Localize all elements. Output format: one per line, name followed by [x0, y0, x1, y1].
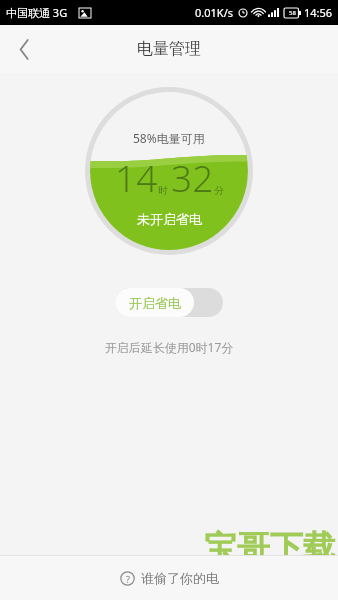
staticText: 58	[289, 9, 296, 17]
button[interactable]: Back	[0, 25, 48, 73]
staticText: 58%电量可用	[133, 130, 205, 146]
staticText: 14:56	[304, 5, 333, 20]
staticText: 分	[214, 184, 224, 197]
staticText: 14	[115, 152, 158, 202]
staticText: 开启后延长使用0时17分	[0, 339, 338, 355]
button[interactable]: ?	[0, 556, 338, 600]
staticText: 中国联通 3G	[6, 5, 68, 20]
staticText: 32	[171, 152, 214, 202]
staticText: 0.01K/s	[195, 5, 233, 20]
staticText: 谁偷了你的电	[141, 570, 219, 586]
staticText: 宝哥下载	[204, 527, 336, 569]
staticText: 电量管理	[137, 39, 201, 59]
button[interactable]: 开启省电	[115, 288, 223, 317]
staticText: 未开启省电	[137, 211, 202, 227]
staticText: 开启省电	[129, 295, 181, 311]
staticText: 时	[158, 184, 168, 197]
staticText: ?	[126, 573, 130, 585]
